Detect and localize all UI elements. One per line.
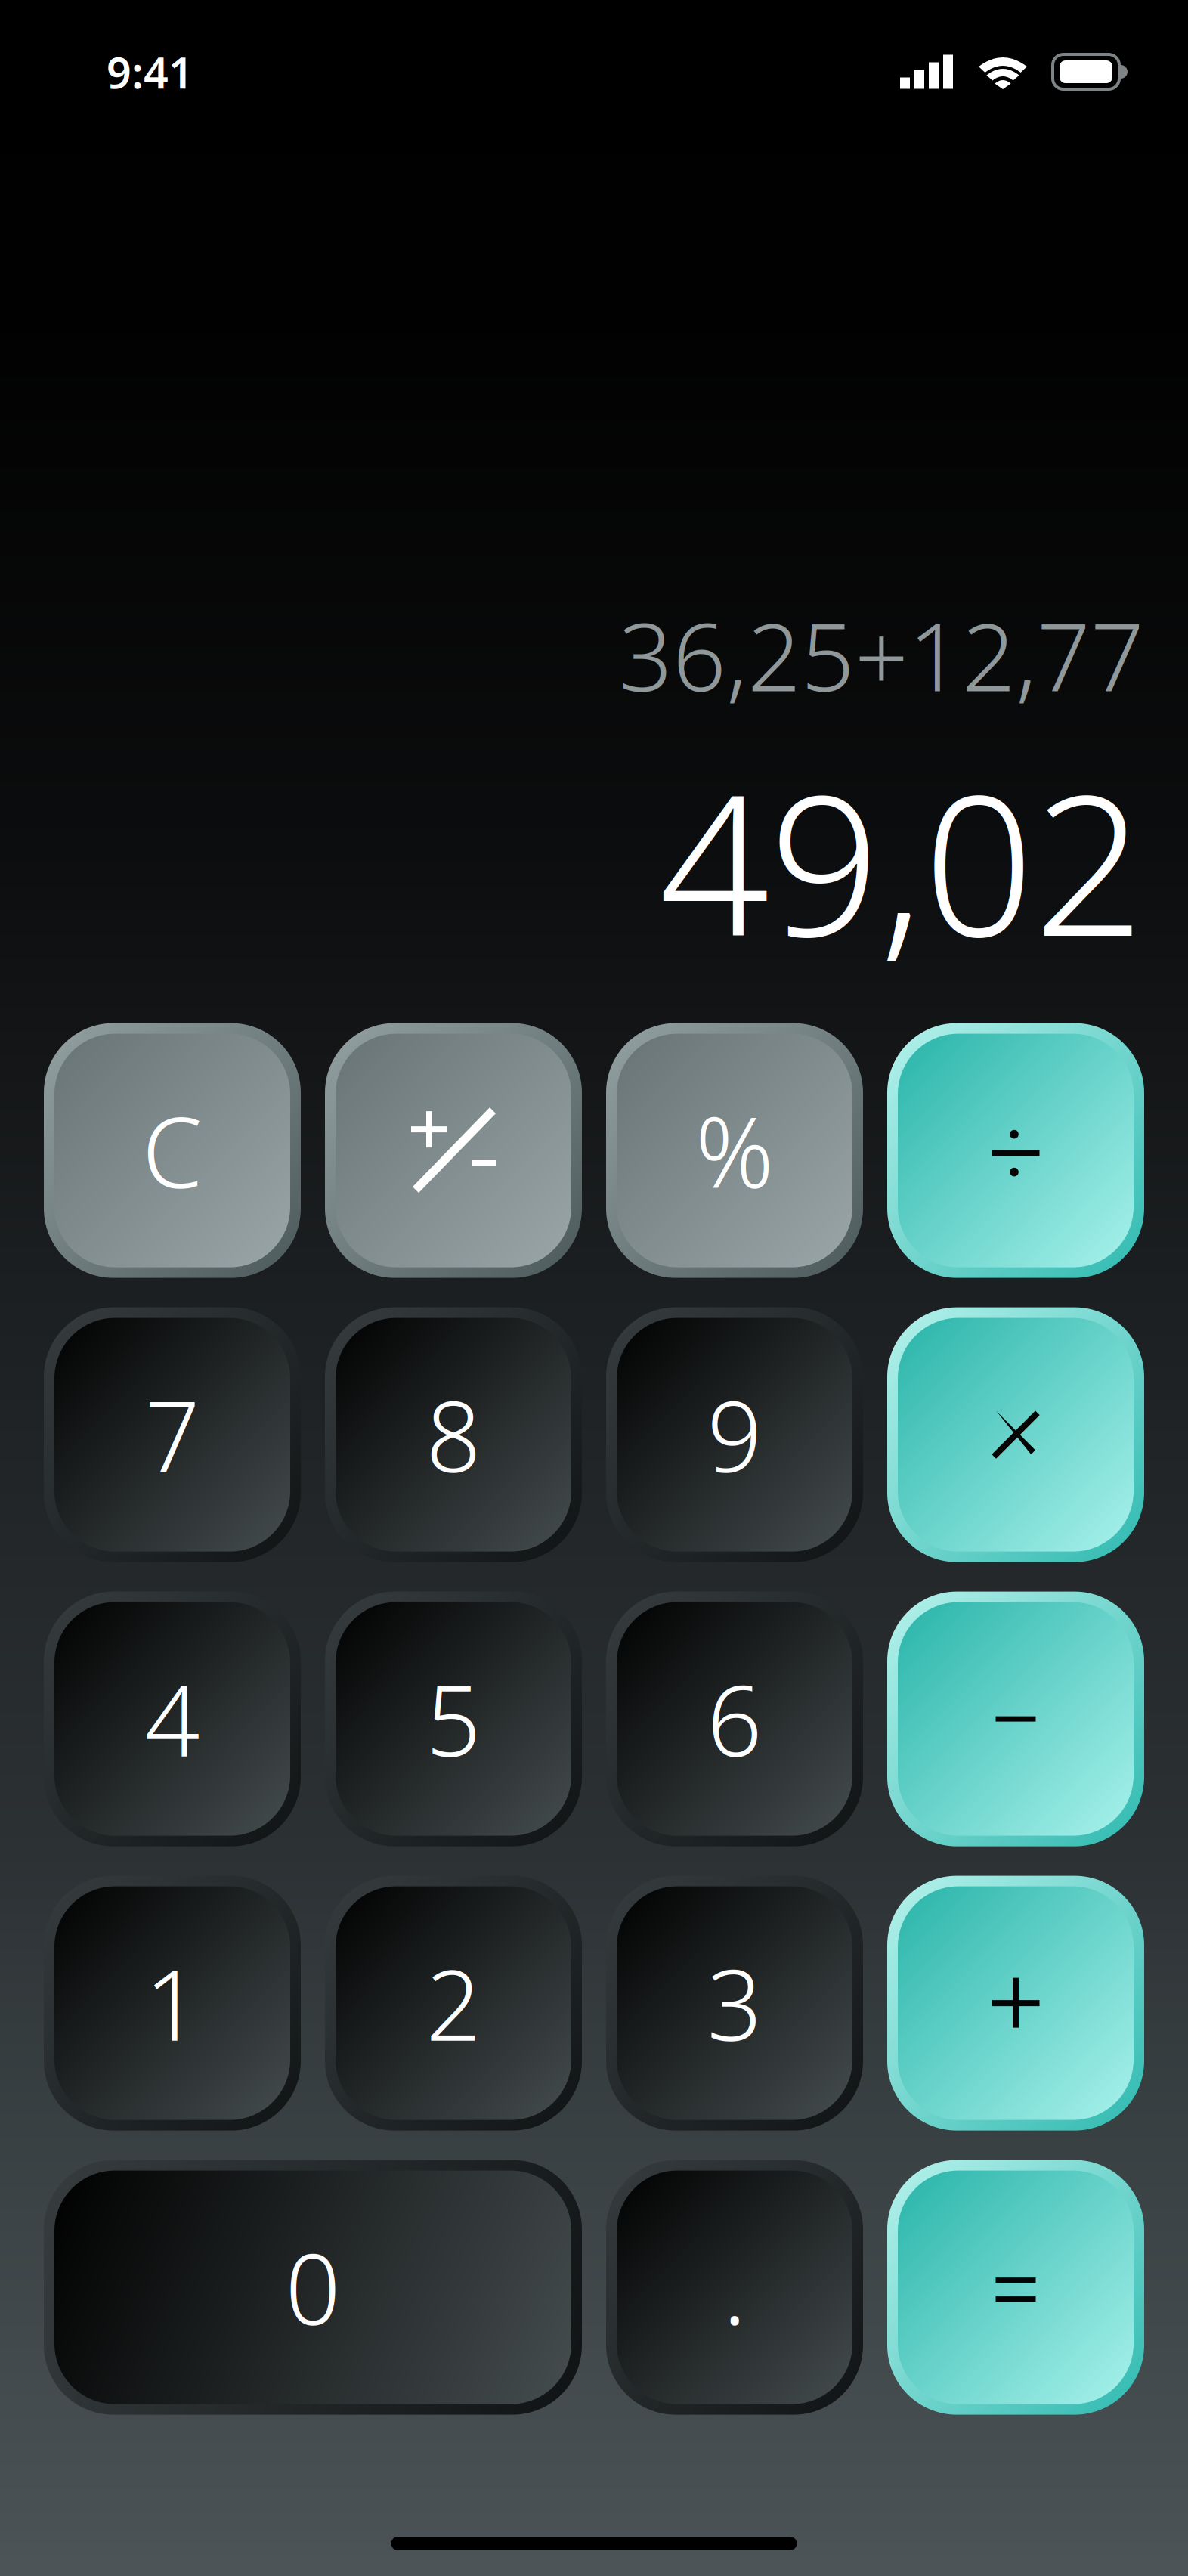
staticText: 9 bbox=[707, 1370, 762, 1499]
staticText: 1 bbox=[145, 1939, 200, 2067]
button[interactable]: 5 bbox=[325, 1592, 582, 1846]
staticText: C bbox=[142, 1086, 203, 1215]
button[interactable] bbox=[325, 1023, 582, 1278]
button[interactable] bbox=[887, 1307, 1144, 1562]
button[interactable] bbox=[887, 2160, 1144, 2415]
button[interactable]: 7 bbox=[44, 1307, 301, 1562]
button[interactable]: 3 bbox=[606, 1876, 863, 2130]
button[interactable]: 1 bbox=[44, 1876, 301, 2130]
button[interactable]: 8 bbox=[325, 1307, 582, 1562]
staticText: 4 bbox=[145, 1655, 200, 1783]
button[interactable]: 4 bbox=[44, 1592, 301, 1846]
button[interactable]: 2 bbox=[325, 1876, 582, 2130]
staticText: 2 bbox=[426, 1939, 481, 2067]
button[interactable] bbox=[887, 1592, 1144, 1846]
button[interactable]: 9 bbox=[606, 1307, 863, 1562]
staticText: 36,25+12,77 bbox=[619, 593, 1144, 717]
staticText: 0 bbox=[285, 2223, 340, 2352]
staticText: 8 bbox=[426, 1370, 481, 1499]
staticText: 5 bbox=[426, 1655, 481, 1783]
staticText: 9:41 bbox=[107, 43, 193, 101]
button[interactable] bbox=[887, 1023, 1144, 1278]
staticText: 6 bbox=[707, 1655, 762, 1783]
staticText: 7 bbox=[145, 1370, 200, 1499]
button[interactable]: % bbox=[606, 1023, 863, 1278]
staticText: . bbox=[723, 2223, 746, 2352]
button[interactable]: . bbox=[606, 2160, 863, 2415]
button[interactable]: 6 bbox=[606, 1592, 863, 1846]
staticText: 3 bbox=[707, 1939, 762, 2067]
button[interactable] bbox=[887, 1876, 1144, 2130]
staticText: 49,02 bbox=[659, 732, 1144, 989]
button[interactable]: C bbox=[44, 1023, 301, 1278]
staticText: % bbox=[695, 1086, 774, 1215]
button[interactable]: 0 bbox=[44, 2160, 582, 2415]
